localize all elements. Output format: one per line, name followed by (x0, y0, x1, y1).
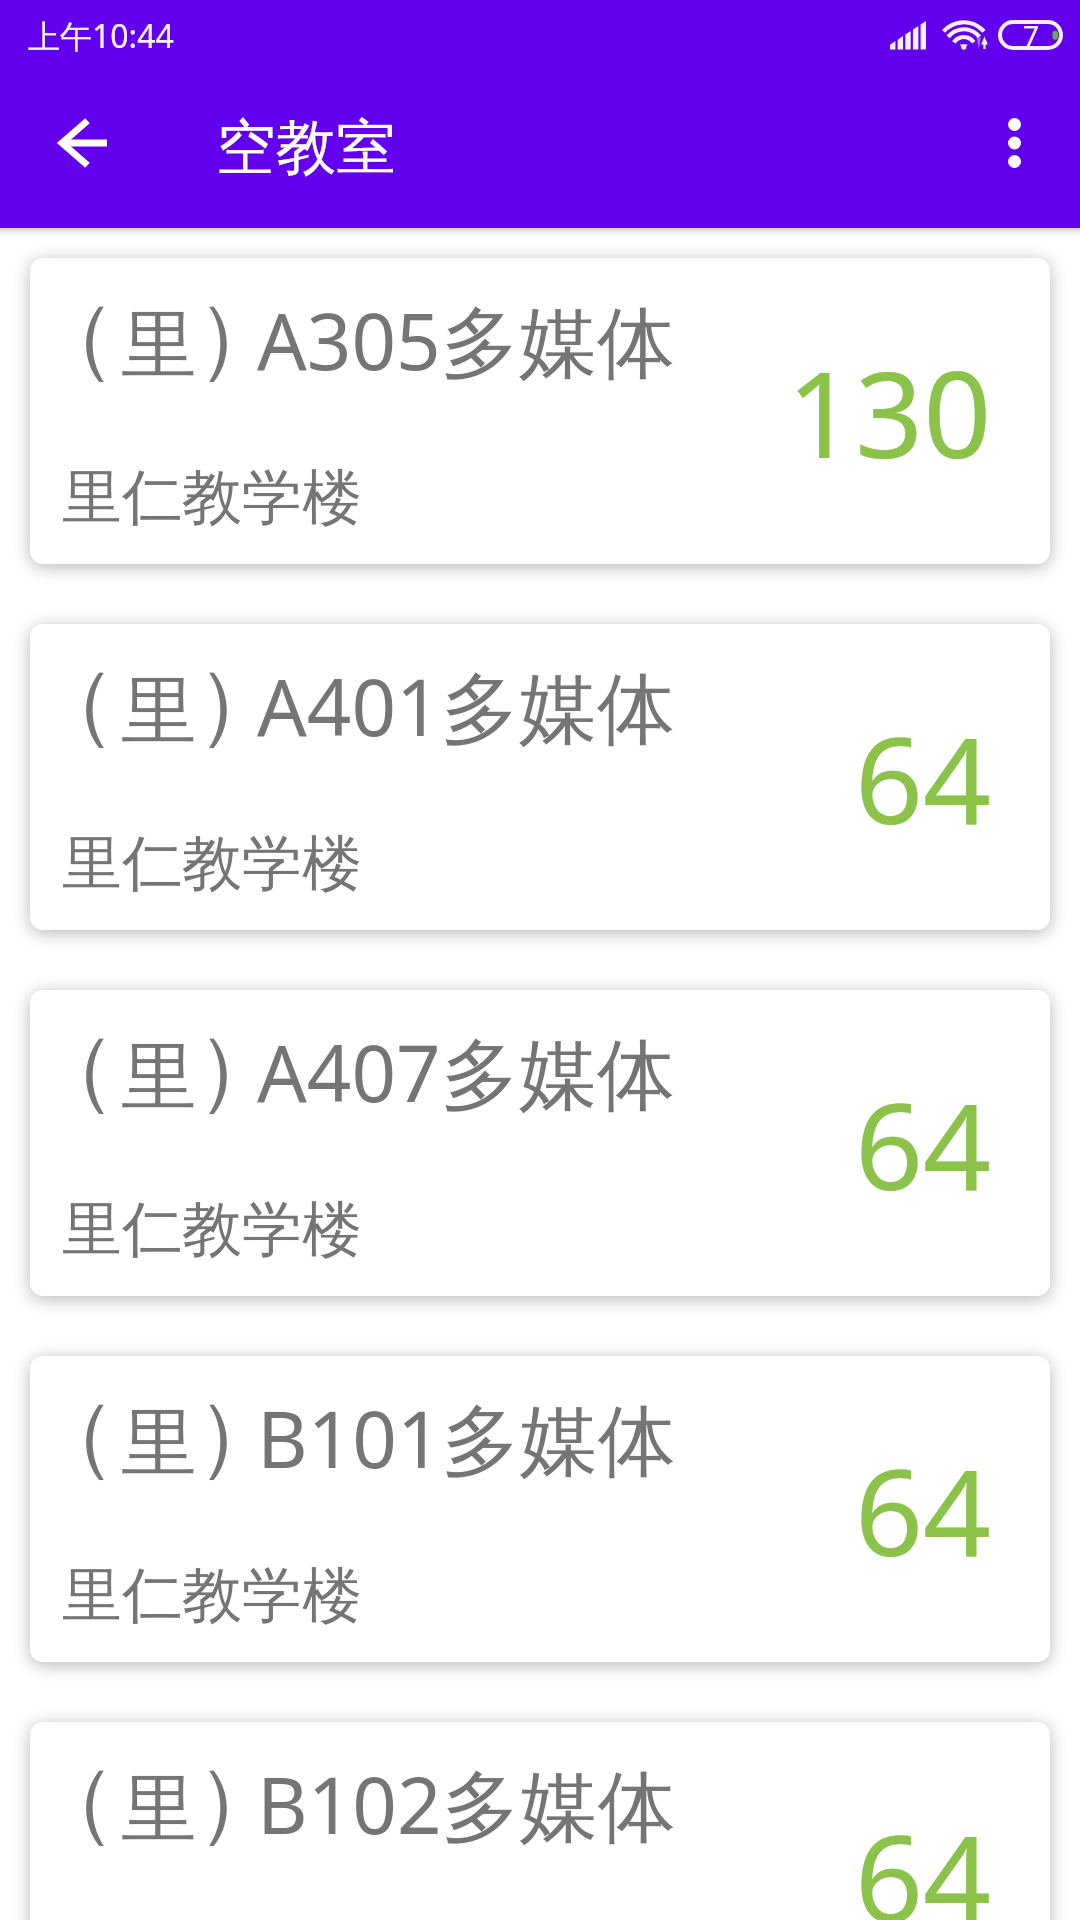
staticText: 64 (855, 697, 992, 859)
staticText: 里仁教学楼 (62, 460, 362, 536)
staticText: 里仁教学楼 (62, 1558, 362, 1634)
staticText: 里 (121, 1762, 197, 1858)
button[interactable]: （ (30, 624, 1050, 930)
staticText: 64 (855, 1795, 992, 1920)
button[interactable]: （ (30, 1722, 1050, 1920)
button[interactable]: （ (30, 258, 1050, 564)
button[interactable]: Back (46, 107, 118, 179)
staticText: 里 (121, 1030, 197, 1126)
staticText: A407多媒体 (257, 1019, 675, 1126)
button[interactable]: （ (30, 990, 1050, 1296)
staticText: 里仁教学楼 (62, 1192, 362, 1268)
staticText: ） (196, 1746, 284, 1857)
staticText: A305多媒体 (257, 287, 675, 394)
staticText: （ (30, 1746, 117, 1857)
staticText: 里仁教学楼 (62, 826, 362, 902)
staticText: B101多媒体 (257, 1385, 676, 1492)
staticText: 64 (855, 1429, 992, 1591)
staticText: （ (30, 282, 117, 393)
staticText: ） (196, 1014, 284, 1125)
staticText: 里 (121, 1396, 197, 1492)
staticText: （ (30, 1380, 117, 1491)
button[interactable]: （ (30, 1356, 1050, 1662)
staticText: （ (30, 1014, 117, 1125)
staticText: 空教室 (216, 110, 396, 186)
button[interactable]: More options (978, 107, 1050, 179)
staticText: ） (196, 282, 284, 393)
staticText: 64 (855, 1063, 992, 1225)
staticText: A401多媒体 (257, 653, 675, 760)
staticText: ） (196, 648, 284, 759)
staticText: B102多媒体 (257, 1751, 676, 1858)
staticText: 130 (787, 331, 992, 493)
staticText: 里 (121, 298, 197, 394)
staticText: 里 (121, 664, 197, 760)
staticText: 7 (1023, 16, 1040, 54)
staticText: ） (196, 1380, 284, 1491)
staticText: 上午10:44 (28, 14, 174, 58)
staticText: （ (30, 648, 117, 759)
